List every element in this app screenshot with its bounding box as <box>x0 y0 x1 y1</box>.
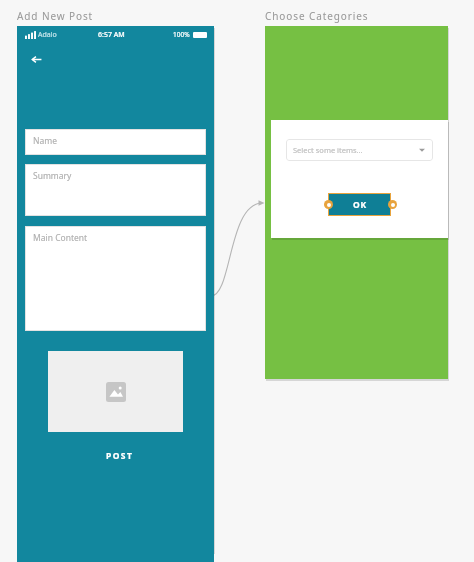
staticText: Select some items... <box>293 145 363 155</box>
staticText: Add New Post <box>17 9 94 23</box>
button[interactable]: Main Content <box>25 226 206 331</box>
button[interactable]: Summary <box>25 164 206 216</box>
button[interactable]: Back <box>21 44 51 74</box>
staticText: Click to upload photo: <box>17 364 214 562</box>
staticText: 6:57 AM <box>98 30 125 40</box>
button[interactable]: Upload photo <box>48 351 183 432</box>
staticText: Choose Categories <box>265 9 369 23</box>
staticText: Adalo <box>38 30 57 40</box>
staticText: POST <box>106 450 134 462</box>
staticText: 100% <box>173 30 190 39</box>
staticText: Summary <box>33 170 72 182</box>
button[interactable]: POST <box>75 445 164 466</box>
staticText: Name <box>33 135 57 147</box>
button[interactable]: Select some items... <box>286 139 433 161</box>
staticText: Main Content <box>33 232 88 244</box>
button[interactable]: OK <box>328 193 391 216</box>
button[interactable]: Name <box>25 129 206 155</box>
staticText: OK <box>353 199 367 211</box>
